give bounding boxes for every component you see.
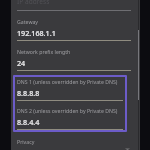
- button[interactable]: Network prefix length: [17, 48, 131, 71]
- other: Open privacy options: [123, 148, 131, 150]
- staticText: DNS 2 (unless overridden by Private DNS): [17, 107, 118, 114]
- button[interactable]: Gateway: [17, 18, 131, 41]
- staticText: DNS 1 (unless overridden by Private DNS): [17, 78, 118, 85]
- staticText: Network prefix length: [17, 48, 71, 55]
- staticText: 8.8.8.8: [17, 88, 40, 98]
- button[interactable]: DNS 1 (unless overridden by Private DNS): [13, 75, 127, 132]
- staticText: Gateway: [17, 18, 39, 25]
- button[interactable]: IP address: [17, 0, 131, 11]
- staticText: IP address: [17, 0, 50, 6]
- staticText: 192.168.1.1: [17, 28, 56, 38]
- staticText: Privacy: [17, 138, 35, 145]
- button[interactable]: Privacy: [17, 138, 131, 150]
- staticText: 24: [17, 58, 26, 68]
- staticText: 8.8.4.4: [17, 117, 40, 127]
